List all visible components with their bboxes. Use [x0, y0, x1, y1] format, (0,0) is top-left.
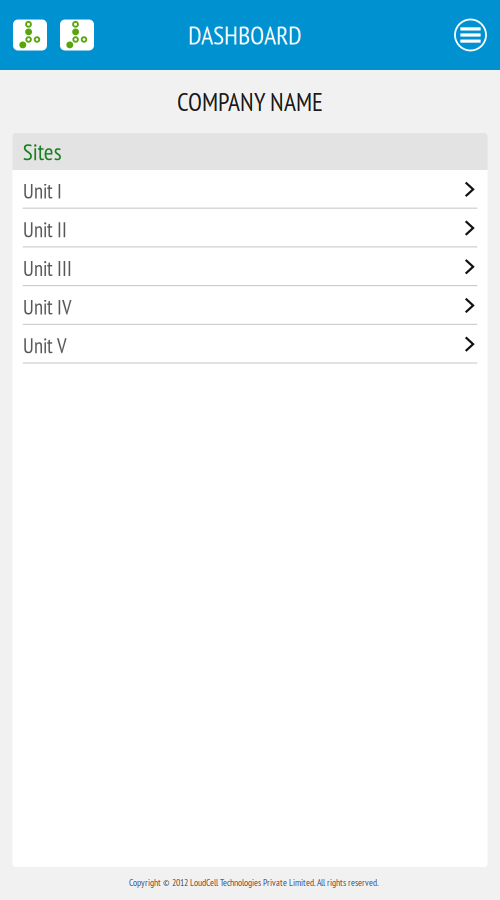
staticText: Sites: [23, 136, 62, 167]
staticText: Copyright © 2012 LoudCell Technologies P…: [129, 876, 379, 889]
staticText: Unit IV: [23, 294, 72, 320]
button[interactable]: LoudCell home: [13, 19, 47, 50]
button[interactable]: Unit V: [12, 325, 487, 363]
staticText: COMPANY NAME: [177, 85, 323, 118]
button[interactable]: Unit III: [12, 247, 487, 286]
button[interactable]: Unit IV: [12, 286, 487, 325]
button[interactable]: Menu: [454, 18, 487, 51]
button[interactable]: Unit I: [12, 170, 487, 209]
staticText: Unit I: [23, 177, 62, 204]
staticText: Unit V: [23, 332, 67, 359]
staticText: Unit III: [23, 255, 72, 282]
staticText: Unit II: [23, 216, 67, 243]
staticText: DASHBOARD: [188, 18, 302, 52]
button[interactable]: Company logo: [60, 19, 94, 50]
button[interactable]: Unit II: [12, 209, 487, 247]
